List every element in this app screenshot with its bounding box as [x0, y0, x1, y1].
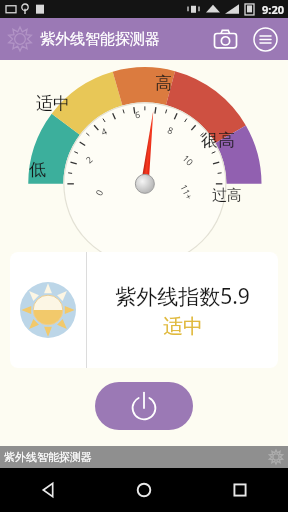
staticText: 6 [135, 108, 141, 120]
staticText: 9:20 [262, 2, 284, 17]
staticText: 紫外线智能探测器 [40, 30, 160, 49]
staticText: 低 [29, 159, 46, 180]
staticText: 2 [83, 152, 95, 165]
button[interactable]: Power [95, 382, 193, 430]
staticText: 0 [92, 187, 106, 197]
staticText: 11+ [178, 182, 196, 202]
button[interactable]: Menu [245, 19, 285, 59]
staticText: 高 [155, 73, 172, 94]
staticText: 8 [166, 123, 176, 137]
staticText: 紫外线指数5.9 [115, 282, 250, 311]
button[interactable]: Camera [205, 19, 245, 59]
button[interactable]: Back [0, 468, 96, 512]
button[interactable]: 紫外线指数5.9 [10, 252, 278, 368]
staticText: 很高 [201, 130, 235, 151]
staticText: 10 [180, 152, 197, 168]
button[interactable]: Recents [192, 468, 288, 512]
staticText: 紫外线智能探测器 [4, 450, 92, 464]
staticText: 适中 [163, 314, 203, 339]
button[interactable]: Home [96, 468, 192, 512]
staticText: 过高 [212, 186, 242, 205]
staticText: 4 [99, 124, 109, 138]
staticText: 适中 [36, 93, 70, 114]
